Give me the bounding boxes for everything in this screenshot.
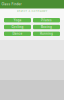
button[interactable]: Pilates bbox=[33, 18, 60, 22]
staticText: Boxing bbox=[41, 25, 52, 29]
staticText: Yoga bbox=[13, 18, 21, 22]
button[interactable]: Yoga bbox=[4, 18, 31, 22]
staticText: Running bbox=[40, 32, 53, 35]
button[interactable]: Running bbox=[33, 32, 60, 36]
button[interactable]: Boxing bbox=[33, 25, 60, 29]
staticText: Pilates bbox=[41, 18, 52, 22]
staticText: SELECT A CATEGORY bbox=[16, 10, 47, 13]
staticText: Cycling bbox=[11, 25, 23, 29]
staticText: Class Finder bbox=[1, 2, 21, 6]
staticText: Dance bbox=[12, 32, 22, 35]
button[interactable]: Dance bbox=[4, 32, 31, 36]
button[interactable]: Cycling bbox=[4, 25, 31, 29]
